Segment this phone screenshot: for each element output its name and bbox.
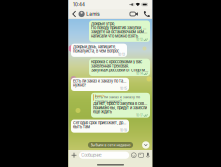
staticText: 10:12 [136, 38, 143, 42]
staticText: Есть ли заказ к заказу по такому нужно? [95, 95, 140, 103]
button[interactable]: Photos [138, 151, 144, 159]
staticText: Lamis [95, 94, 105, 98]
staticText: 10:15 [120, 87, 127, 91]
staticText: еще ждать [93, 109, 112, 114]
staticText: Коробка с кроссовками у вас [91, 60, 142, 64]
staticText: 10:44 [73, 2, 85, 7]
staticText: Сегодня срок приезжает, должно [73, 120, 127, 125]
button[interactable]: Back [71, 9, 77, 19]
staticText: Вы были в сети недавно [90, 143, 130, 147]
staticText: нужно? [73, 83, 86, 87]
staticText: Добрый день, напишите, [73, 45, 116, 49]
staticText: зайдёте на остановочном номере [91, 30, 148, 34]
staticText: Добрые утро, [91, 21, 115, 26]
staticText: написали что можно взять [91, 34, 138, 38]
button[interactable]: Voice message [146, 151, 150, 159]
staticText: Сообщение [81, 153, 101, 158]
staticText: пожалуйста, в чем вопрос [73, 49, 119, 53]
staticText: 10:17 [136, 113, 143, 117]
button[interactable]: Вы были в сети недавно [88, 142, 133, 148]
staticText: Закупка/Кроссовки от Спортмэн [91, 68, 148, 72]
staticText: понимаю бы, придут и занесли [93, 105, 147, 110]
button[interactable]: Scroll to bottom [142, 141, 150, 149]
button[interactable]: Video call [130, 10, 138, 18]
button[interactable]: Emoji [131, 151, 136, 159]
staticText: 10:14 [136, 72, 143, 76]
button[interactable]: Attach [71, 151, 77, 159]
staticText: Да нет, просто закупка в сквера, [93, 101, 148, 106]
staticText: 10:19 [120, 128, 127, 132]
staticText: По поводу принятия закупки, Вы [91, 25, 148, 30]
staticText: быть там [73, 124, 90, 129]
staticText: Есть ли заказ к заказу по такому [73, 79, 127, 83]
staticText: Lamis [86, 11, 99, 17]
staticText: заявленная трековая. [91, 64, 129, 68]
button[interactable]: Call [143, 9, 150, 18]
staticText: 10:13 [118, 53, 125, 57]
